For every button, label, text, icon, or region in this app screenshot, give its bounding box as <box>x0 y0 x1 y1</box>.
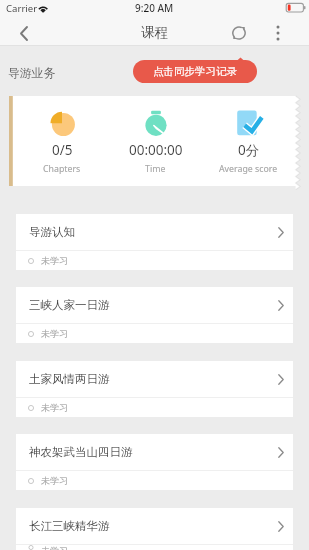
staticText: 神农架武当山四日游 <box>29 445 133 459</box>
button[interactable]: Refresh <box>225 20 253 46</box>
staticText: 未学习 <box>41 402 68 413</box>
staticText: Average score <box>219 163 278 175</box>
staticText: Chapters <box>43 163 81 175</box>
staticText: 未学习 <box>41 545 68 550</box>
staticText: 00:00:00 <box>129 141 183 159</box>
staticText: 未学习 <box>41 475 68 486</box>
button[interactable]: 点击同步学习记录 <box>133 57 257 83</box>
button[interactable]: 长江三峡精华游 <box>16 508 293 550</box>
staticText: 导游业务 <box>8 66 56 81</box>
staticText: 土家风情两日游 <box>29 372 110 386</box>
button[interactable]: Back <box>9 20 38 46</box>
button[interactable]: 三峡人家一日游 <box>16 287 293 343</box>
button[interactable]: 神农架武当山四日游 <box>16 434 293 490</box>
staticText: 点击同步学习记录 <box>153 65 237 78</box>
staticText: Time <box>145 163 166 175</box>
staticText: 0/5 <box>52 141 73 159</box>
staticText: 未学习 <box>41 255 68 266</box>
button[interactable]: 土家风情两日游 <box>16 361 293 417</box>
button[interactable]: More options <box>264 20 291 46</box>
staticText: 未学习 <box>41 328 68 339</box>
staticText: 三峡人家一日游 <box>29 298 110 312</box>
button[interactable]: 导游认知 <box>16 214 293 270</box>
staticText: 0分 <box>238 141 260 159</box>
staticText: 导游认知 <box>29 225 75 239</box>
staticText: 课程 <box>141 24 169 41</box>
staticText: Carrier <box>6 2 38 15</box>
staticText: 9:20 AM <box>135 1 174 15</box>
staticText: 长江三峡精华游 <box>29 519 110 533</box>
